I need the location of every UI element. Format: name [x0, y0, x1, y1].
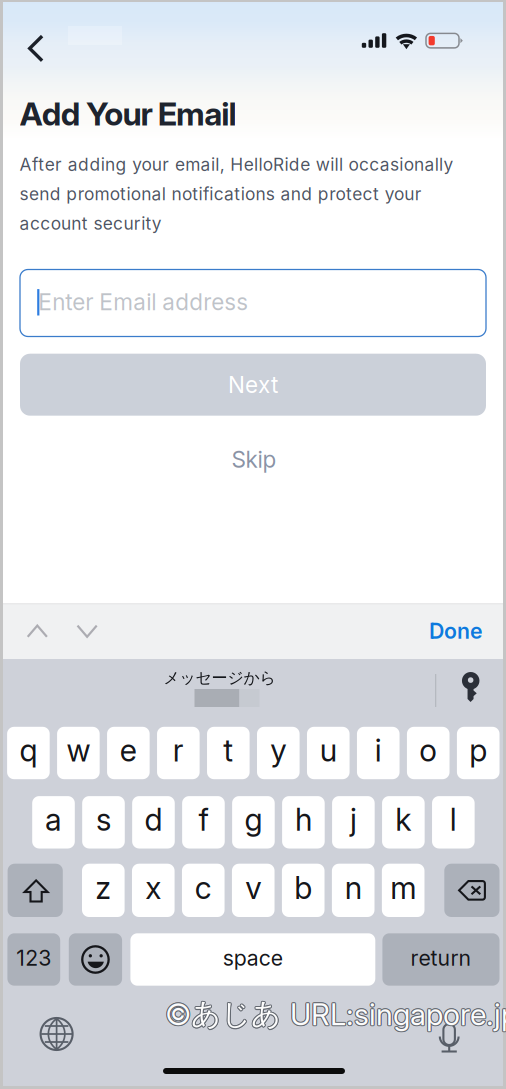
button[interactable]: 123: [7, 933, 60, 986]
button[interactable]: Skip: [194, 437, 314, 481]
staticText: Add Your Email: [19, 95, 236, 133]
staticText: account security: [20, 213, 162, 234]
button[interactable]: t: [207, 727, 250, 779]
staticText: Enter Email address: [38, 289, 248, 315]
button[interactable]: Next field: [62, 610, 112, 652]
button[interactable]: o: [407, 727, 449, 779]
button[interactable]: d: [132, 796, 175, 848]
button[interactable]: Passwords: [451, 662, 490, 713]
button[interactable]: x: [132, 864, 175, 917]
button[interactable]: s: [82, 796, 125, 848]
staticText: メッセージから: [164, 668, 276, 688]
button[interactable]: y: [257, 727, 300, 779]
button[interactable]: q: [7, 727, 50, 779]
staticText: x: [145, 870, 161, 906]
button[interactable]: Back: [14, 20, 58, 76]
staticText: t: [223, 732, 233, 768]
button[interactable]: Delete: [444, 864, 499, 917]
staticText: d: [144, 802, 162, 838]
staticText: Done: [429, 618, 483, 644]
staticText: ©あじあ URL:singapore.jp: [164, 996, 506, 1032]
staticText: o: [419, 732, 437, 768]
staticText: ©あじあ URL:singapore.jp: [165, 996, 506, 1032]
staticText: c: [195, 870, 212, 906]
staticText: e: [120, 732, 137, 768]
button[interactable]: m: [382, 864, 424, 917]
staticText: u: [320, 732, 337, 768]
button[interactable]: i: [357, 727, 400, 779]
staticText: After adding your email, HelloRide will …: [20, 154, 453, 174]
button[interactable]: z: [82, 864, 125, 917]
staticText: v: [245, 870, 261, 906]
button[interactable]: a: [32, 796, 75, 848]
button[interactable]: u: [307, 727, 350, 779]
button[interactable]: space: [130, 933, 375, 986]
staticText: return: [410, 945, 471, 971]
staticText: ©あじあ URL:singapore.jp: [164, 997, 506, 1033]
staticText: f: [198, 802, 208, 838]
staticText: a: [45, 802, 62, 838]
button[interactable]: Previous field: [12, 610, 62, 652]
staticText: ©あじあ URL:singapore.jp: [166, 995, 506, 1031]
staticText: ©あじあ URL:singapore.jp: [165, 997, 506, 1033]
staticText: space: [223, 945, 283, 971]
button[interactable]: return: [382, 933, 499, 986]
button[interactable]: v: [232, 864, 274, 917]
staticText: Skip: [231, 446, 276, 473]
staticText: r: [173, 732, 184, 768]
staticText: ©あじあ URL:singapore.jp: [164, 995, 506, 1031]
button[interactable]: l: [432, 796, 475, 848]
staticText: ©あじあ URL:singapore.jp: [165, 995, 506, 1031]
staticText: h: [295, 802, 312, 838]
staticText: w: [66, 732, 90, 768]
button[interactable]: w: [57, 727, 100, 779]
staticText: y: [270, 732, 286, 768]
button[interactable]: r: [157, 727, 200, 779]
button[interactable]: Emoji: [69, 933, 122, 986]
staticText: s: [96, 802, 111, 838]
staticText: j: [350, 802, 357, 838]
staticText: n: [345, 870, 362, 906]
staticText: l: [450, 802, 457, 838]
button[interactable]: Done: [403, 609, 483, 653]
staticText: i: [375, 732, 382, 768]
button[interactable]: n: [332, 864, 374, 917]
button[interactable]: p: [457, 727, 499, 779]
button[interactable]: h: [282, 796, 325, 848]
staticText: k: [395, 802, 411, 838]
button[interactable]: Next: [20, 354, 486, 416]
button[interactable]: k: [382, 796, 425, 848]
button[interactable]: g: [232, 796, 275, 848]
button[interactable]: e: [107, 727, 150, 779]
staticText: m: [390, 870, 416, 906]
staticText: q: [19, 732, 37, 768]
staticText: 123: [16, 945, 51, 971]
button[interactable]: j: [332, 796, 375, 848]
button[interactable]: Shift: [8, 864, 63, 917]
staticText: p: [469, 732, 487, 768]
staticText: b: [294, 870, 312, 906]
button[interactable]: c: [182, 864, 225, 917]
staticText: Next: [228, 371, 278, 398]
button[interactable]: b: [282, 864, 324, 917]
button[interactable]: f: [182, 796, 225, 848]
staticText: ©あじあ URL:singapore.jp: [166, 996, 506, 1032]
staticText: send promotional notifications and prote…: [20, 184, 422, 204]
staticText: g: [244, 802, 262, 838]
staticText: z: [95, 870, 111, 906]
button[interactable]: Dictation: [428, 1014, 470, 1063]
staticText: ©あじあ URL:singapore.jp: [166, 997, 506, 1033]
button[interactable]: Next keyboard: [31, 1008, 83, 1060]
